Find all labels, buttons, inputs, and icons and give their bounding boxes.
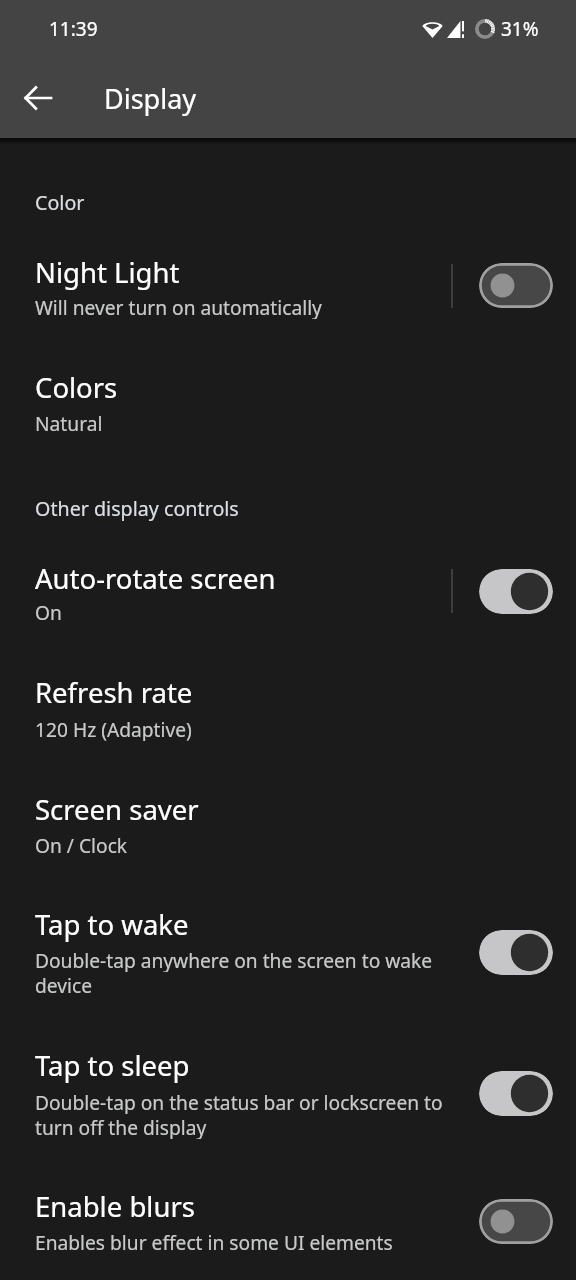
staticText: Tap to wake <box>35 906 189 943</box>
staticText: On / Clock <box>35 832 128 857</box>
staticText: Color <box>35 189 85 216</box>
staticText: Natural <box>35 410 103 435</box>
button[interactable]: Back <box>14 74 62 122</box>
staticText: Auto-rotate screen <box>35 560 276 597</box>
staticText: Screen saver <box>35 791 199 828</box>
button[interactable]: Toggle off <box>479 263 553 308</box>
staticText: Refresh rate <box>35 674 193 711</box>
staticText: Double-tap anywhere on the screen to wak… <box>35 947 433 972</box>
staticText: Display <box>104 80 197 117</box>
staticText: 120 Hz (Adaptive) <box>35 716 192 741</box>
button[interactable]: Toggle on <box>479 1071 553 1116</box>
button[interactable]: Toggle on <box>479 930 553 975</box>
staticText: Colors <box>35 369 118 406</box>
staticText: Enable blurs <box>35 1188 195 1225</box>
button[interactable]: Toggle on <box>479 569 553 614</box>
staticText: device <box>35 972 92 997</box>
staticText: Will never turn on automatically <box>35 294 322 319</box>
staticText: 11:39 <box>49 16 98 42</box>
staticText: Enables blur effect in some UI elements <box>35 1229 393 1254</box>
staticText: turn off the display <box>35 1114 207 1139</box>
staticText: Night Light <box>35 254 180 291</box>
staticText: Tap to sleep <box>35 1047 190 1084</box>
staticText: 31% <box>501 16 539 42</box>
staticText: Double-tap on the status bar or lockscre… <box>35 1089 443 1114</box>
button[interactable]: Toggle off <box>479 1199 553 1244</box>
staticText: On <box>35 599 62 624</box>
staticText: Other display controls <box>35 495 239 522</box>
